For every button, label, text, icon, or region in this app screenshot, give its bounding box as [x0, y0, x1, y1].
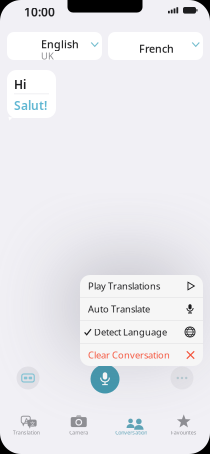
staticText: Camera	[69, 429, 88, 436]
staticText: Auto Translate	[88, 303, 150, 315]
button[interactable]: A	[0, 412, 52, 438]
staticText: 10:00	[24, 4, 55, 20]
button[interactable]: Detect Language	[80, 321, 203, 343]
staticText: Clear Conversation	[88, 349, 170, 361]
button[interactable]: Clear Conversation	[80, 344, 203, 366]
button[interactable]: Camera	[52, 412, 105, 438]
staticText: Conversation	[115, 429, 147, 436]
button[interactable]: Text input	[15, 365, 41, 391]
staticText: 文	[30, 421, 35, 427]
button[interactable]: Favourites	[157, 412, 210, 438]
button[interactable]: Conversation	[105, 412, 157, 438]
staticText: Favourites	[171, 429, 197, 436]
button[interactable]: Auto Translate	[80, 298, 203, 320]
button[interactable]: Record	[90, 364, 120, 394]
button[interactable]: More	[169, 365, 195, 391]
button[interactable]: Play Translations	[80, 275, 203, 297]
staticText: French	[139, 41, 174, 56]
staticText: Detect Language	[94, 326, 167, 338]
staticText: Salut!	[14, 97, 47, 113]
staticText: Translation	[13, 429, 40, 436]
staticText: A	[24, 416, 28, 425]
button[interactable]: French	[108, 32, 203, 60]
staticText: UK	[41, 50, 54, 62]
staticText: English	[41, 37, 79, 51]
staticText: Play Translations	[88, 280, 160, 292]
button[interactable]: English	[7, 32, 102, 60]
staticText: Hi	[14, 76, 26, 92]
